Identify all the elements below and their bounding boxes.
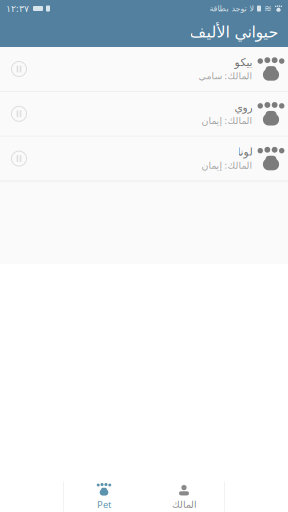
staticText: لا توجد بطاقة [209, 4, 254, 13]
button[interactable]: المالك [144, 481, 224, 511]
staticText: ١٢:٣٧ [6, 2, 29, 15]
staticText: المالك: سامي [198, 69, 252, 82]
staticText: روي [234, 101, 252, 113]
button[interactable]: روي [0, 92, 288, 137]
staticText: بيكو [234, 56, 252, 68]
staticText: المالك: إيمان [201, 159, 252, 171]
staticText: حيواني الأليف [189, 23, 278, 41]
staticText: لونا [237, 146, 252, 158]
staticText: Pet [97, 498, 111, 511]
button[interactable]: Pet [64, 481, 144, 511]
staticText: ≋ [264, 3, 272, 14]
staticText: المالك: إيمان [201, 114, 252, 127]
staticText: المالك [171, 499, 196, 510]
button[interactable]: بيكو [0, 47, 288, 92]
button[interactable]: لونا [0, 137, 288, 181]
